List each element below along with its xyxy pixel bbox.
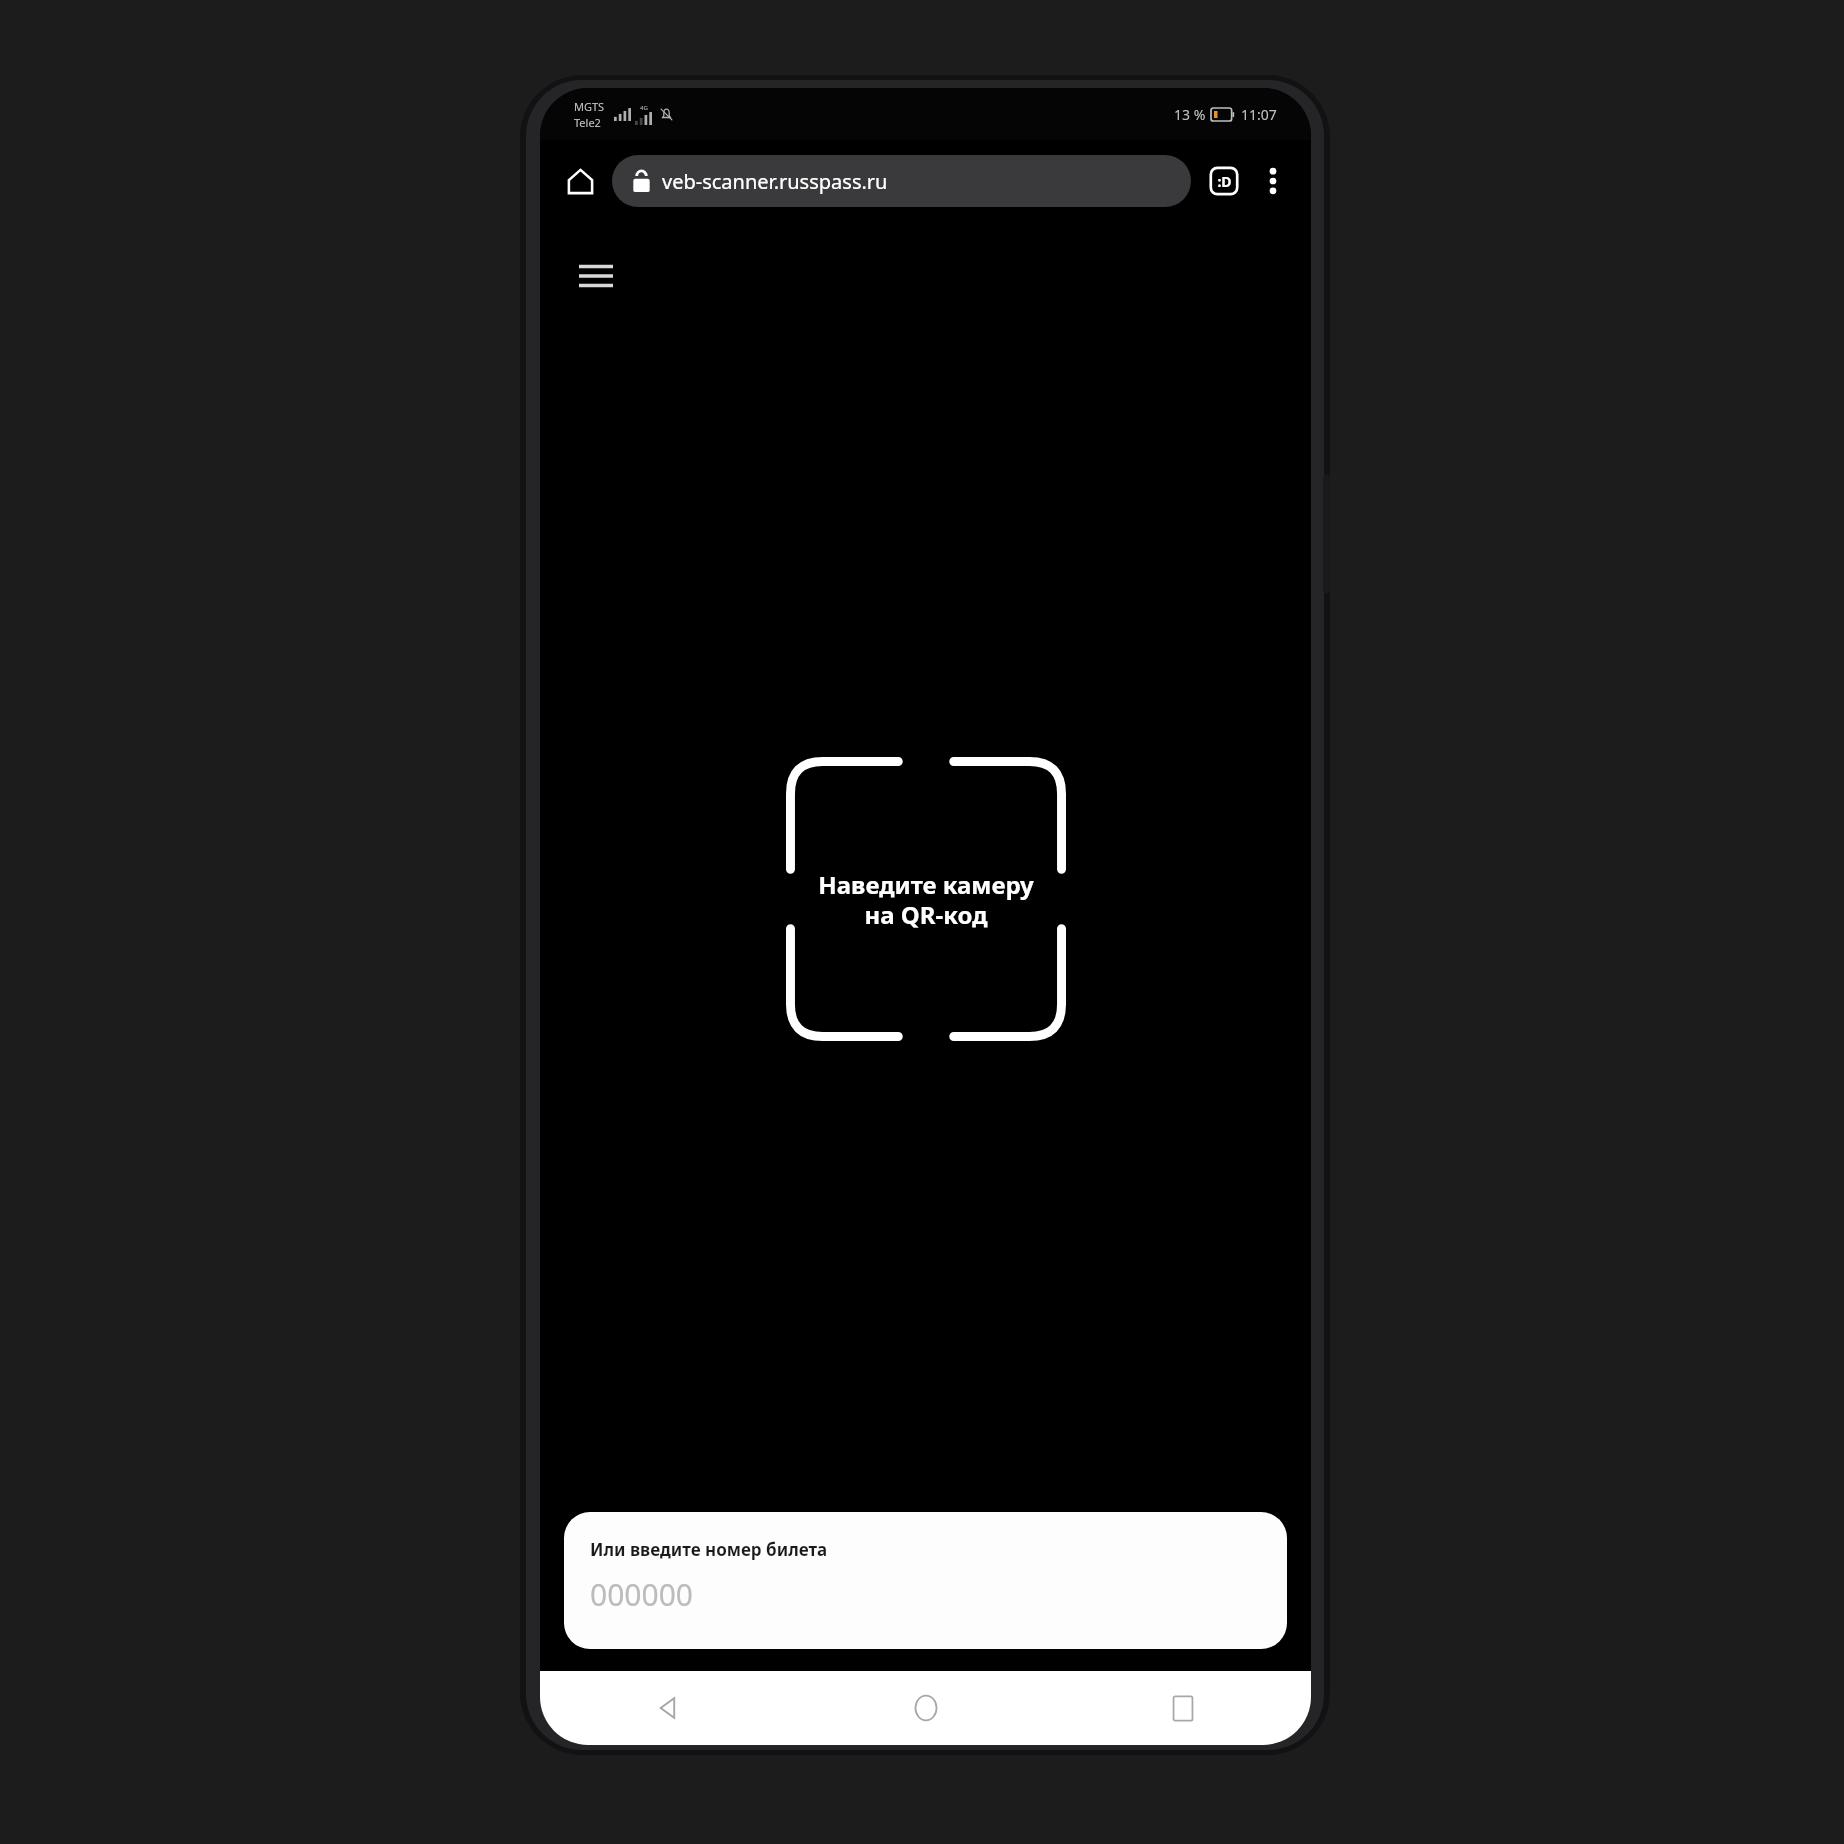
button[interactable]: Home	[556, 157, 604, 205]
staticText: veb-scanner.russpass.ru	[662, 168, 888, 195]
staticText: :D	[1217, 172, 1232, 191]
button[interactable]: Back	[540, 1671, 797, 1745]
staticText: 13 %	[1174, 105, 1206, 124]
staticText: 11:07	[1241, 105, 1277, 124]
staticText: Tele2	[574, 115, 601, 130]
button[interactable]: More options	[1251, 159, 1295, 203]
button[interactable]: Tabs	[1201, 158, 1247, 204]
button[interactable]: Recent apps	[1054, 1671, 1311, 1745]
staticText: Наведите камеру на QR-код	[818, 868, 1034, 931]
button[interactable]: Home	[797, 1671, 1054, 1745]
staticText: 000000	[590, 1574, 693, 1615]
staticText: MGTS	[574, 99, 605, 114]
staticText: 4G	[640, 104, 648, 112]
button[interactable]: Или введите номер билета	[564, 1512, 1287, 1649]
button[interactable]: veb-scanner.russpass.ru	[612, 155, 1191, 207]
staticText: Или введите номер билета	[590, 1538, 828, 1561]
button[interactable]: Menu	[570, 250, 622, 302]
